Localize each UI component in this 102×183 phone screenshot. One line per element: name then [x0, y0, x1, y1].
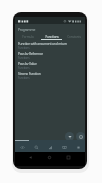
button[interactable]: Home: [45, 153, 54, 162]
staticText: Constants: [67, 35, 81, 39]
staticText: Function with argument and return: [18, 41, 67, 45]
button[interactable]: Constants: [62, 35, 85, 40]
button[interactable]: Statistics: [43, 140, 57, 152]
button[interactable]: Recents: [64, 153, 73, 162]
button[interactable]: More: [71, 140, 85, 152]
button[interactable]: Function with argument and return: [15, 40, 85, 50]
button[interactable]: Search: [29, 140, 43, 152]
staticText: Functions: [18, 46, 30, 50]
button[interactable]: Strcmp Function: [15, 70, 85, 80]
button[interactable]: Info: [76, 132, 85, 141]
button[interactable]: Functions: [41, 35, 62, 40]
button[interactable]: Pass by Reference: [15, 50, 85, 60]
staticText: Pass by Value: [18, 61, 37, 65]
button[interactable]: Back: [26, 153, 35, 162]
button[interactable]: Formula: [15, 35, 41, 40]
button[interactable]: Saved: [57, 140, 71, 152]
staticText: Strcmp Function: [18, 71, 41, 75]
staticText: Functions: [18, 56, 30, 60]
staticText: Functions: [18, 66, 30, 70]
staticText: Programme: [18, 27, 36, 32]
staticText: Pass by Reference: [18, 51, 43, 55]
button[interactable]: Code: [15, 140, 29, 152]
staticText: Functions: [18, 76, 30, 80]
button[interactable]: Pass by Value: [15, 60, 85, 70]
button[interactable]: Filter: [65, 132, 74, 141]
staticText: Formula: [22, 35, 34, 39]
staticText: Functions: [45, 35, 59, 39]
